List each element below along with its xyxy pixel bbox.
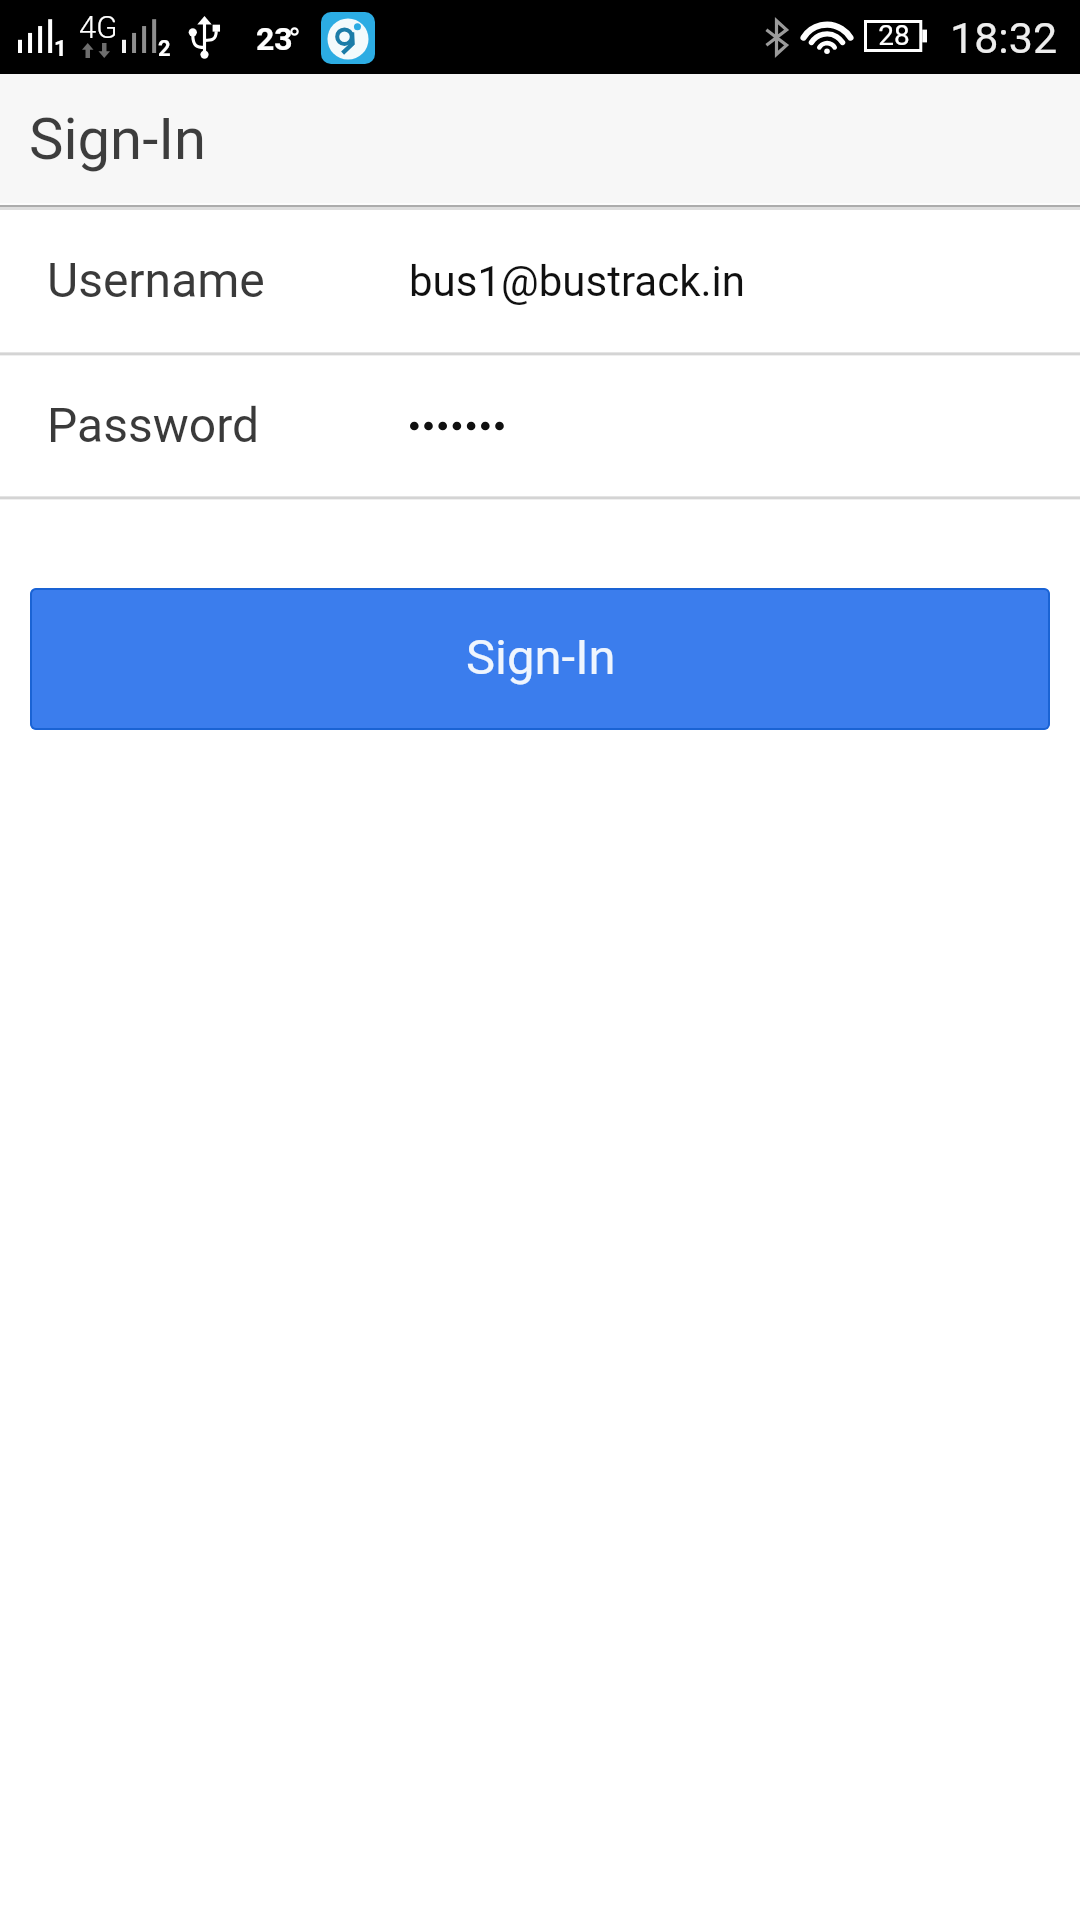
other: App notification (321, 12, 375, 64)
other: Bluetooth (765, 20, 788, 55)
staticText: 2 (158, 36, 171, 62)
staticText: Password (47, 397, 260, 453)
button[interactable]: Username (0, 210, 1080, 352)
staticText: Username (47, 252, 265, 308)
other: USB connected (188, 15, 221, 60)
staticText: 4G (79, 9, 118, 45)
staticText: Sign-In (466, 629, 616, 686)
staticText: bus1@bustrack.in (409, 257, 745, 306)
button[interactable]: Password (0, 356, 1080, 496)
staticText: Sign-In (29, 105, 206, 173)
other: Battery 28 percent (864, 20, 927, 52)
button[interactable]: Sign-In (30, 588, 1050, 730)
staticText: 18:32 (950, 13, 1058, 63)
staticText: 23 (256, 20, 293, 54)
staticText: 28 (878, 19, 910, 51)
staticText: 1 (54, 36, 67, 62)
other: Wi-Fi (805, 19, 849, 54)
